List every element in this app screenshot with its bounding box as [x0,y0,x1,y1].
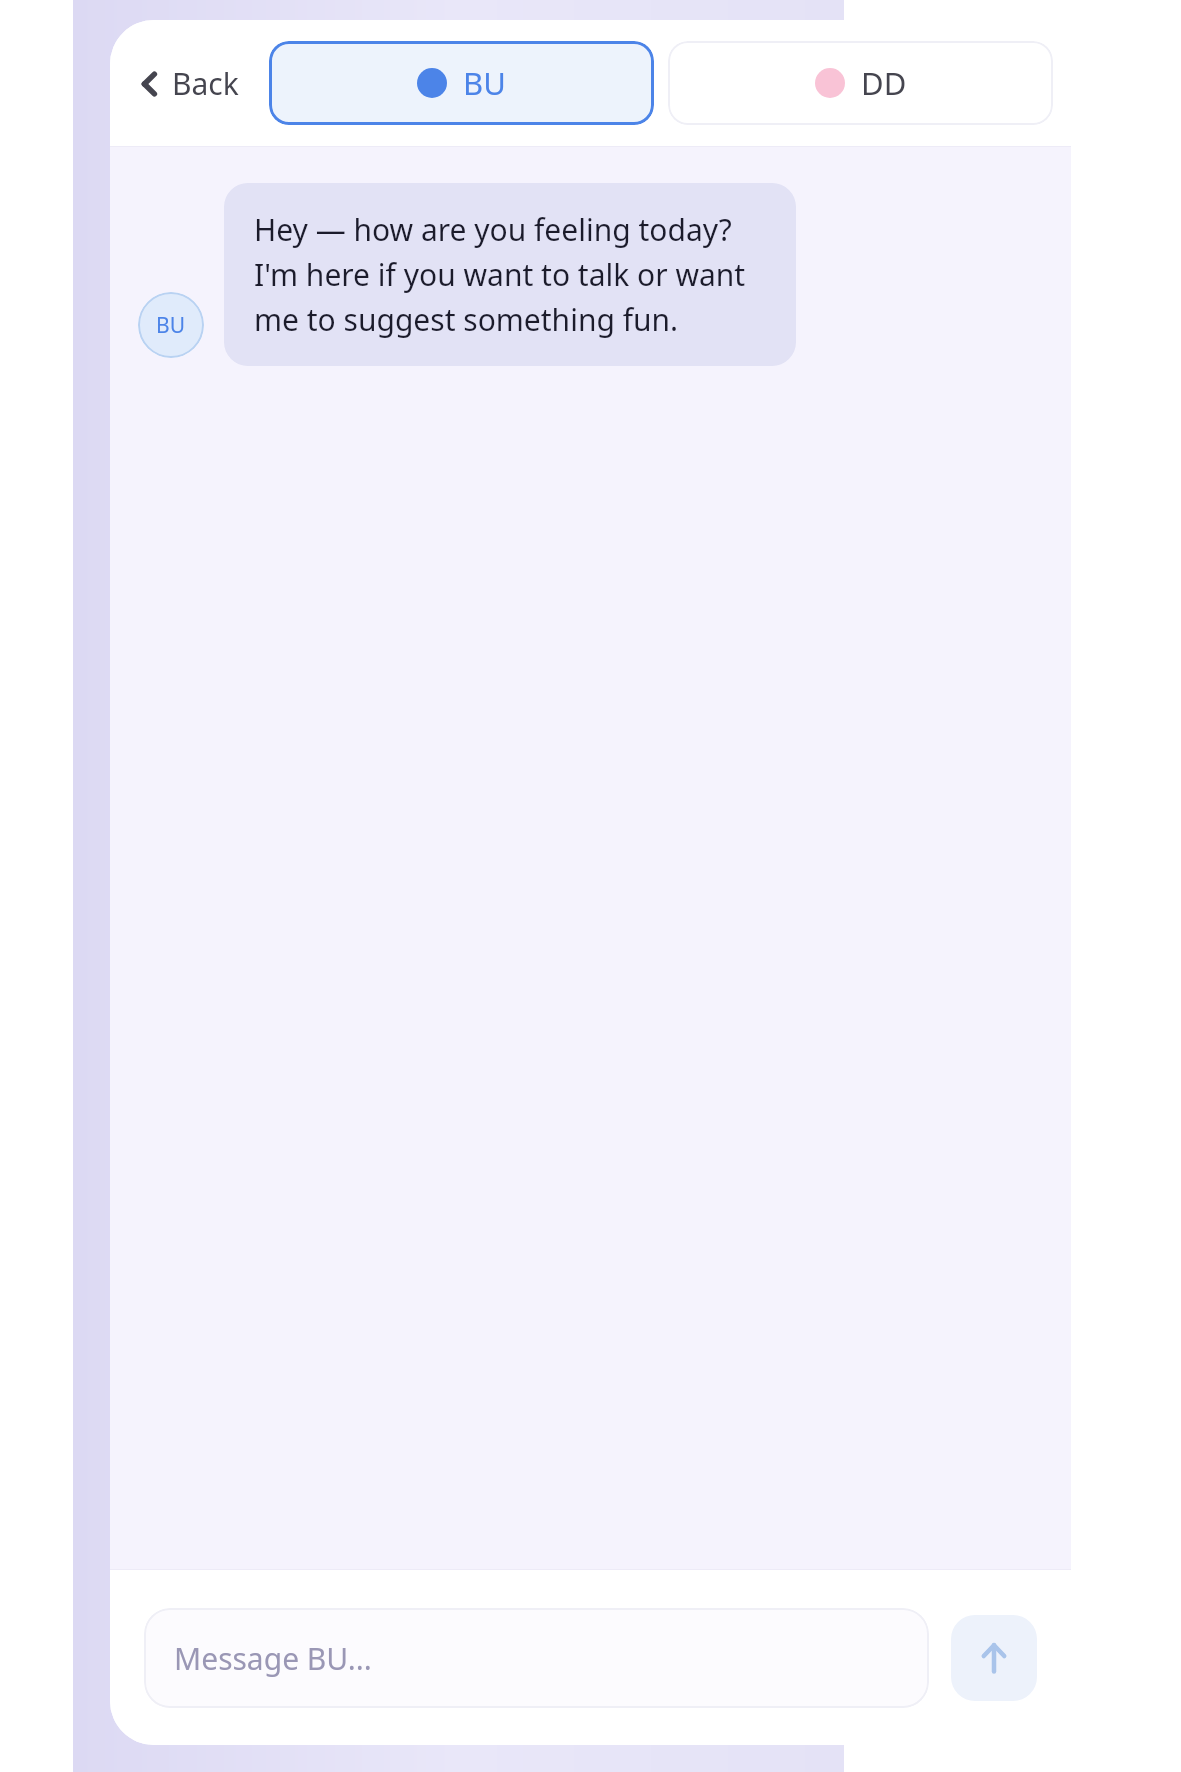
button[interactable]: BU [269,41,654,125]
staticText: Hey — how are you feeling today? I'm her… [254,209,766,340]
staticText: BU [463,62,506,104]
staticText: Back [172,63,239,104]
staticText: Message BU... [174,1638,372,1679]
button[interactable]: Message BU... [144,1608,929,1708]
staticText: DD [861,62,907,104]
button[interactable]: Hey — how are you feeling today? I'm her… [224,183,796,366]
button[interactable]: DD [668,41,1053,125]
button[interactable]: Back [128,53,251,114]
staticText: BU [156,311,186,340]
button[interactable]: Send [951,1615,1037,1701]
